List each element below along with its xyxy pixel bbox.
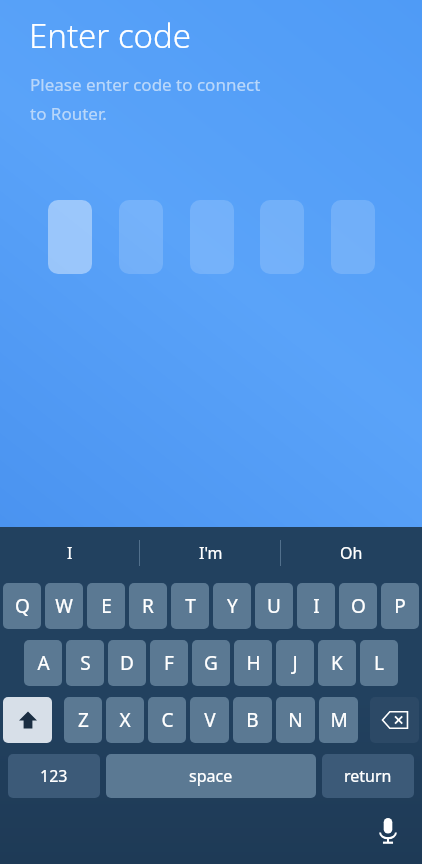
staticText: B: [246, 707, 259, 733]
button[interactable]: F: [150, 640, 188, 686]
staticText: N: [288, 707, 303, 733]
button[interactable]: I: [297, 583, 335, 629]
staticText: J: [292, 650, 298, 676]
staticText: D: [120, 650, 134, 676]
button[interactable]: A: [24, 640, 62, 686]
staticText: H: [246, 650, 261, 676]
staticText: Please enter code to connect to Router.: [30, 73, 261, 125]
staticText: R: [142, 593, 154, 619]
button[interactable]: G: [192, 640, 230, 686]
staticText: P: [394, 593, 406, 619]
button[interactable]: C: [148, 697, 186, 743]
button[interactable]: 123: [8, 754, 100, 798]
staticText: M: [330, 707, 348, 733]
staticText: T: [185, 593, 196, 619]
button[interactable]: N: [276, 697, 315, 743]
staticText: C: [161, 707, 174, 733]
button[interactable]: E: [87, 583, 125, 629]
button[interactable]: W: [45, 583, 83, 629]
staticText: O: [351, 593, 366, 619]
staticText: U: [267, 593, 281, 619]
staticText: I: [313, 593, 320, 619]
button[interactable]: Q: [3, 583, 41, 629]
button[interactable]: I'm: [140, 527, 281, 578]
staticText: Enter code: [29, 13, 192, 58]
button[interactable]: Z: [64, 697, 102, 743]
staticText: G: [204, 650, 218, 676]
button[interactable]: D: [108, 640, 146, 686]
staticText: E: [101, 593, 112, 619]
staticText: L: [374, 650, 384, 676]
staticText: Oh: [340, 542, 363, 564]
button[interactable]: B: [233, 697, 272, 743]
button[interactable]: Code digit 2: [119, 200, 163, 274]
staticText: F: [164, 650, 174, 676]
button[interactable]: P: [381, 583, 419, 629]
staticText: A: [37, 650, 50, 676]
button[interactable]: X: [106, 697, 144, 743]
staticText: 123: [40, 765, 68, 787]
button[interactable]: Backspace: [370, 697, 419, 743]
staticText: Q: [15, 593, 30, 619]
staticText: Z: [78, 707, 89, 733]
staticText: Y: [227, 593, 238, 619]
button[interactable]: Code digit 1: [48, 200, 92, 274]
button[interactable]: K: [318, 640, 356, 686]
staticText: X: [119, 707, 131, 733]
button[interactable]: space: [106, 754, 316, 798]
button[interactable]: M: [319, 697, 358, 743]
button[interactable]: J: [276, 640, 314, 686]
button[interactable]: Code digit 5: [331, 200, 375, 274]
staticText: S: [80, 650, 91, 676]
button[interactable]: Oh: [281, 527, 422, 578]
staticText: V: [204, 707, 216, 733]
button[interactable]: R: [129, 583, 167, 629]
button[interactable]: T: [171, 583, 209, 629]
button[interactable]: Code digit 3: [190, 200, 234, 274]
button[interactable]: U: [255, 583, 293, 629]
button[interactable]: Shift: [3, 697, 52, 743]
button[interactable]: L: [360, 640, 398, 686]
staticText: I'm: [199, 542, 223, 564]
button[interactable]: Y: [213, 583, 251, 629]
staticText: space: [189, 765, 233, 787]
button[interactable]: Code digit 4: [260, 200, 304, 274]
staticText: return: [344, 765, 392, 787]
button[interactable]: O: [339, 583, 377, 629]
button[interactable]: return: [322, 754, 414, 798]
button[interactable]: H: [234, 640, 272, 686]
button[interactable]: Voice input: [366, 809, 410, 853]
staticText: K: [331, 650, 343, 676]
button[interactable]: V: [190, 697, 229, 743]
button[interactable]: S: [66, 640, 104, 686]
staticText: I: [67, 542, 73, 564]
staticText: W: [55, 593, 73, 619]
button[interactable]: I: [0, 527, 140, 578]
